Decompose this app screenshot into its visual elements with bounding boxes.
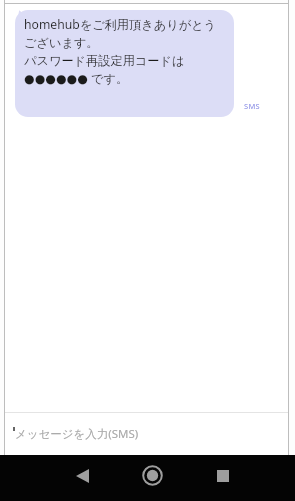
button[interactable]: Recent apps <box>202 455 244 496</box>
staticText: パスワード再設定用コードは <box>24 53 185 68</box>
button[interactable]: Home <box>131 455 173 496</box>
staticText: メッセージを入力(SMS) <box>15 426 139 442</box>
staticText: ございます。 <box>24 35 99 50</box>
button[interactable]: Back <box>61 455 103 496</box>
button[interactable]: メッセージを入力(SMS) <box>5 413 288 455</box>
staticText: ●●●●●● です。 <box>24 70 129 87</box>
staticText: homehubをご利用頂きありがとう <box>24 16 217 33</box>
button[interactable]: homehubをご利用頂きありがとう <box>15 10 234 117</box>
staticText: SMS <box>244 101 260 111</box>
button[interactable]: SMS <box>244 101 260 111</box>
